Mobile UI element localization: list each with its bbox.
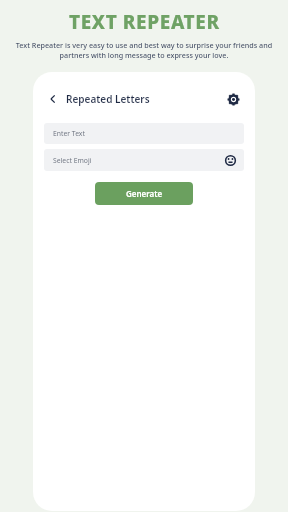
button[interactable]: Select Emoji xyxy=(44,149,244,171)
staticText: TEXT REPEATER xyxy=(69,9,220,35)
button[interactable]: Generate xyxy=(95,182,193,205)
staticText: Repeated Letters xyxy=(66,92,150,106)
staticText: Text Repeater is very easy to use and be… xyxy=(14,40,274,60)
staticText: Enter Text xyxy=(53,129,85,138)
button[interactable]: Enter Text xyxy=(44,123,244,144)
button[interactable]: Back xyxy=(45,91,61,107)
staticText: Generate xyxy=(126,188,163,199)
button[interactable]: Settings xyxy=(223,89,243,109)
staticText: Select Emoji xyxy=(53,156,92,165)
other: Emoji picker xyxy=(224,154,237,167)
